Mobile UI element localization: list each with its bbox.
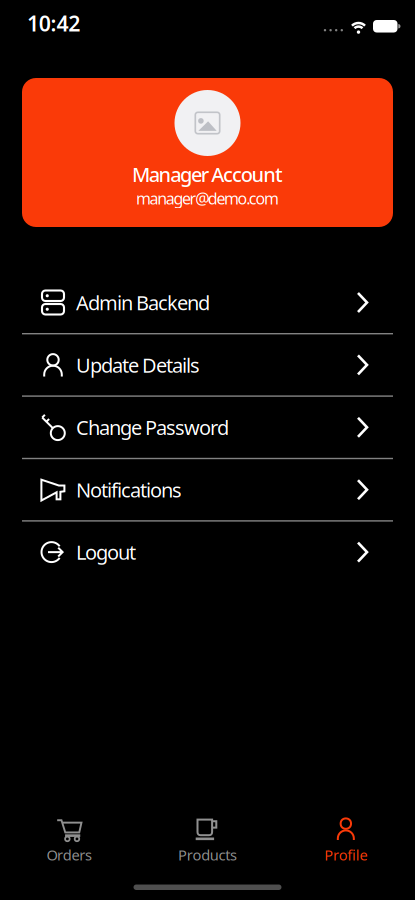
staticText: manager@demo.com — [136, 188, 279, 209]
button[interactable]: Admin Backend — [0, 272, 415, 333]
staticText: Orders — [46, 845, 92, 864]
staticText: Profile — [324, 845, 367, 864]
staticText: Manager Account — [132, 161, 283, 188]
staticText: Logout — [76, 539, 136, 565]
staticText: Update Details — [76, 352, 200, 378]
staticText: Notifications — [76, 476, 182, 503]
staticText: Admin Backend — [76, 289, 210, 316]
button[interactable]: Products — [138, 816, 277, 864]
button[interactable]: Orders — [0, 816, 138, 864]
staticText: 10:42 — [27, 9, 80, 37]
staticText: Change Password — [76, 414, 229, 441]
button[interactable]: Notifications — [0, 459, 415, 520]
button[interactable]: Update Details — [0, 334, 415, 395]
button[interactable]: Logout — [0, 522, 415, 583]
staticText: Products — [178, 845, 237, 864]
button[interactable]: Profile — [277, 816, 415, 864]
button[interactable]: Change Password — [0, 397, 415, 458]
